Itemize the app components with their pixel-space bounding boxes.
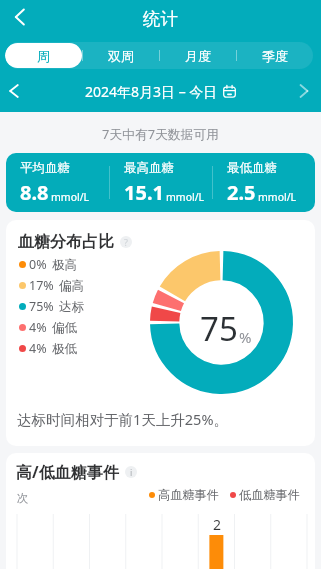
staticText: 最低血糖: [227, 160, 277, 176]
button[interactable]: 双周: [83, 43, 159, 68]
staticText: 0%: [29, 256, 47, 273]
staticText: 次: [17, 491, 29, 505]
staticText: 季度: [262, 48, 288, 64]
staticText: 2024年8月3日 – 今日: [85, 82, 218, 101]
staticText: 4%: [29, 340, 47, 357]
staticText: %: [239, 327, 252, 347]
staticText: 最高血糖: [124, 160, 174, 176]
staticText: 偏低: [52, 320, 77, 336]
button[interactable]: 月度: [160, 43, 236, 68]
staticText: mmol/L: [166, 190, 205, 204]
staticText: 15.1: [124, 179, 164, 206]
button[interactable]: 平均血糖: [6, 153, 315, 212]
staticText: 75%: [29, 298, 54, 315]
staticText: 4%: [29, 319, 47, 336]
staticText: 偏高: [59, 278, 84, 294]
staticText: 达标时间相对于前1天上升25%。: [17, 409, 228, 429]
staticText: 极高: [52, 257, 77, 273]
staticText: 周: [37, 48, 50, 64]
button[interactable]: 季度: [237, 43, 313, 68]
button[interactable]: 周: [5, 43, 82, 68]
staticText: 月度: [185, 48, 211, 64]
staticText: 7天中有7天数据可用: [102, 125, 220, 142]
staticText: 血糖分布占比: [18, 232, 114, 252]
staticText: 平均血糖: [20, 160, 70, 176]
staticText: 低血糖事件: [239, 487, 300, 502]
staticText: mmol/L: [258, 190, 297, 204]
staticText: 8.8: [20, 179, 49, 206]
staticText: 极低: [52, 341, 77, 357]
staticText: 17%: [29, 277, 54, 294]
staticText: 双周: [108, 48, 134, 64]
staticText: 达标: [59, 299, 84, 315]
button[interactable]: Help: [120, 236, 132, 248]
button[interactable]: Back: [0, 1, 32, 33]
button[interactable]: Next period: [292, 79, 316, 103]
staticText: 75: [200, 306, 238, 351]
staticText: ?: [124, 236, 128, 248]
staticText: 2.5: [227, 179, 256, 206]
staticText: 高/低血糖事件: [16, 461, 119, 483]
staticText: 2: [213, 515, 222, 534]
staticText: 统计: [143, 8, 178, 30]
staticText: i: [130, 466, 133, 478]
staticText: 高血糖事件: [158, 487, 219, 502]
staticText: mmol/L: [51, 190, 90, 204]
button[interactable]: Info: [125, 466, 137, 478]
button[interactable]: Previous period: [2, 79, 26, 103]
